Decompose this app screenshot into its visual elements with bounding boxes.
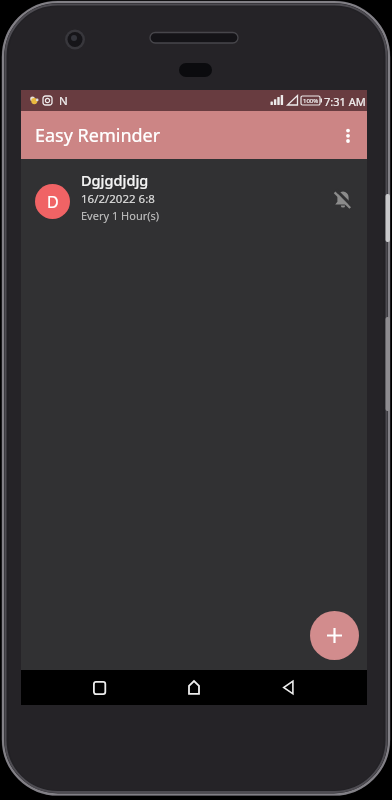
button[interactable] bbox=[53, 670, 147, 705]
button[interactable] bbox=[147, 670, 241, 705]
button[interactable] bbox=[334, 121, 362, 149]
staticText: Every 1 Hour(s) bbox=[81, 208, 160, 223]
staticText: 7:31 AM bbox=[324, 94, 366, 109]
button[interactable] bbox=[310, 611, 359, 660]
staticText: 100% bbox=[303, 97, 319, 105]
button[interactable] bbox=[241, 670, 335, 705]
staticText: 16/2/2022 6:8 bbox=[81, 191, 155, 207]
staticText: Easy Reminder bbox=[35, 123, 161, 148]
button[interactable]: D bbox=[21, 159, 367, 229]
staticText: D bbox=[47, 191, 59, 213]
staticText: Dgjgdjdjg bbox=[81, 170, 149, 190]
staticText: N bbox=[59, 93, 68, 109]
